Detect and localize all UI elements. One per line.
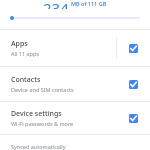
staticText: Apps — [11, 39, 28, 49]
staticText: Device settings — [11, 109, 62, 119]
button[interactable]: Apps — [0, 30, 150, 66]
staticText: MB of 111 GB — [71, 0, 107, 7]
staticText: Synced automatically — [11, 143, 66, 150]
staticText: All 11 apps — [11, 50, 39, 57]
button[interactable]: Contacts — [0, 67, 150, 101]
staticText: Device and SIM contacts — [11, 86, 74, 93]
button[interactable]: Back up device settings — [129, 114, 138, 123]
button[interactable]: Back up apps — [129, 44, 138, 53]
button[interactable]: Device settings — [0, 102, 150, 134]
staticText: Contacts — [11, 75, 41, 85]
staticText: Wi-Fi passwords & more — [11, 120, 74, 127]
staticText: 234 — [43, 0, 69, 9]
button[interactable]: Back up contacts — [129, 80, 138, 89]
